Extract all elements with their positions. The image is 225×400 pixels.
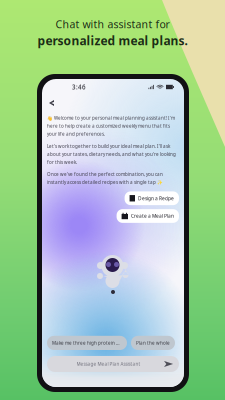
staticText: personalized meal plans. — [37, 32, 187, 49]
button[interactable]: Plan the whole — [131, 336, 175, 350]
button[interactable]: Make me three high protein dinners — [47, 336, 127, 350]
staticText: Let's work together to build your ideal … — [47, 143, 176, 165]
button[interactable]: Create a Meal Plan — [117, 209, 179, 223]
staticText: 👋 Welcome to your personal meal planning… — [47, 115, 175, 137]
staticText: Create a Meal Plan — [131, 213, 174, 219]
button[interactable]: Design a Recipe — [125, 191, 179, 205]
staticText: Chat with assistant for — [55, 17, 169, 31]
staticText: Message Meal Plan Assistant — [76, 361, 140, 367]
button[interactable]: Message Meal Plan Assistant — [47, 356, 179, 372]
staticText: Make me three high protein dinners — [52, 340, 122, 346]
button[interactable]: Back — [45, 96, 58, 110]
staticText: 3:46 — [72, 83, 86, 91]
staticText: Design a Recipe — [138, 195, 174, 201]
staticText: Once we've found the perfect combination… — [47, 171, 163, 185]
staticText: Plan the whole — [136, 340, 170, 346]
